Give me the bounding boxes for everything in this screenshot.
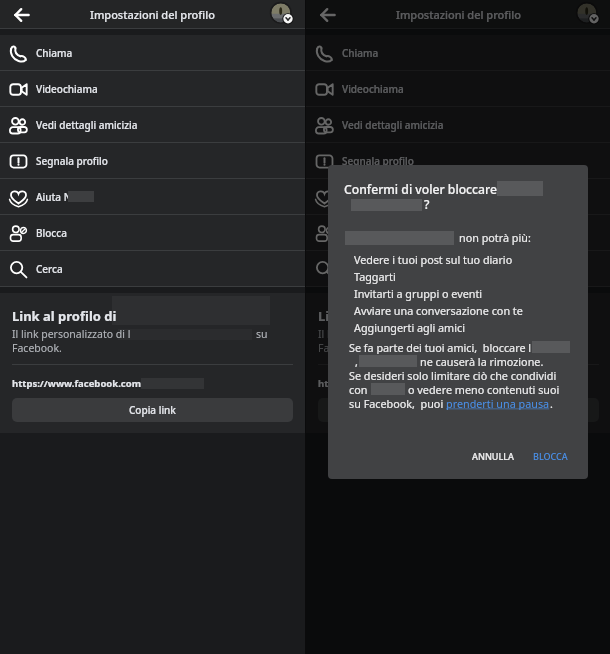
staticText: Link al profilo di: [12, 307, 117, 325]
staticText: Taggarti: [354, 269, 396, 284]
staticText: Il link personalizzato di l: [318, 327, 437, 341]
staticText: https://www.facebook.com: [318, 377, 447, 390]
button[interactable]: Cerca: [0, 251, 305, 287]
button[interactable]: Blocca: [306, 215, 610, 251]
staticText: Copia link: [129, 403, 176, 417]
staticText: o vedere meno contenuti suoi: [408, 382, 560, 396]
button[interactable]: Vedi dettagli amicizia: [0, 107, 305, 143]
staticText: Se desideri solo limitare ciò che condiv…: [349, 368, 557, 382]
staticText: su: [256, 327, 268, 341]
staticText: Blocca: [342, 226, 373, 240]
staticText: https://www.facebook.com: [12, 377, 141, 390]
staticText: Avviare una conversazione con te: [354, 303, 523, 318]
staticText: con: [349, 382, 368, 396]
staticText: BLOCCA: [533, 450, 568, 462]
staticText: Vedi dettagli amicizia: [342, 118, 444, 132]
staticText: ANNULLA: [472, 450, 515, 462]
button[interactable]: Copia link: [318, 398, 599, 422]
staticText: Impostazioni del profilo: [90, 7, 215, 22]
staticText: Vedere i tuoi post sul tuo diario: [354, 252, 513, 267]
staticText: Copia link: [435, 403, 482, 417]
button[interactable]: Blocca: [0, 215, 305, 251]
staticText: Invitarti a gruppi o eventi: [354, 286, 483, 301]
staticText: Aggiungerti agli amici: [354, 320, 465, 335]
button[interactable]: Segnala profilo: [0, 143, 305, 179]
staticText: Se fa parte dei tuoi amici, bloccare l: [349, 340, 532, 354]
button[interactable]: Chiama: [306, 35, 610, 71]
staticText: Segnala profilo: [36, 154, 108, 168]
staticText: Videochiama: [342, 82, 404, 96]
button[interactable]: Chiama: [0, 35, 305, 71]
staticText: Cerca: [36, 262, 63, 276]
button[interactable]: prenderti una pausa: [446, 396, 550, 410]
staticText: Facebook.: [12, 341, 62, 355]
button[interactable]: Segnala profilo: [306, 143, 610, 179]
staticText: Impostazioni del profilo: [396, 7, 521, 22]
staticText: ?: [424, 196, 430, 213]
button[interactable]: Cerca: [306, 251, 610, 287]
staticText: non potrà più:: [459, 230, 531, 245]
button[interactable]: Profilo: [577, 3, 599, 25]
staticText: Link al profilo di: [318, 307, 423, 325]
staticText: Il link personalizzato di l: [12, 327, 131, 341]
staticText: ne causerà la rimozione.: [420, 354, 544, 368]
staticText: Facebook.: [318, 341, 368, 355]
button[interactable]: Videochiama: [0, 71, 305, 107]
button[interactable]: Copia link: [12, 398, 293, 422]
staticText: Cerca: [342, 262, 369, 276]
button[interactable]: Videochiama: [306, 71, 610, 107]
staticText: ,: [355, 354, 358, 368]
button[interactable]: Profilo: [271, 3, 293, 25]
staticText: Chiama: [342, 46, 379, 60]
staticText: Chiama: [36, 46, 73, 60]
button[interactable]: Indietro: [316, 3, 340, 27]
staticText: Videochiama: [36, 82, 98, 96]
button[interactable]: Aiuta N: [306, 179, 610, 215]
staticText: Segnala profilo: [342, 154, 414, 168]
staticText: Aiuta N: [342, 190, 378, 204]
staticText: Aiuta N: [36, 190, 72, 204]
staticText: su Facebook, puoi: [349, 396, 446, 410]
button[interactable]: Aiuta N: [0, 179, 305, 215]
staticText: Confermi di voler bloccare: [344, 181, 497, 198]
staticText: Vedi dettagli amicizia: [36, 118, 138, 132]
button[interactable]: BLOCCA: [528, 446, 573, 466]
button[interactable]: Vedi dettagli amicizia: [306, 107, 610, 143]
button[interactable]: Indietro: [10, 3, 34, 27]
staticText: .: [550, 396, 553, 410]
staticText: Blocca: [36, 226, 67, 240]
button[interactable]: ANNULLA: [467, 446, 520, 466]
